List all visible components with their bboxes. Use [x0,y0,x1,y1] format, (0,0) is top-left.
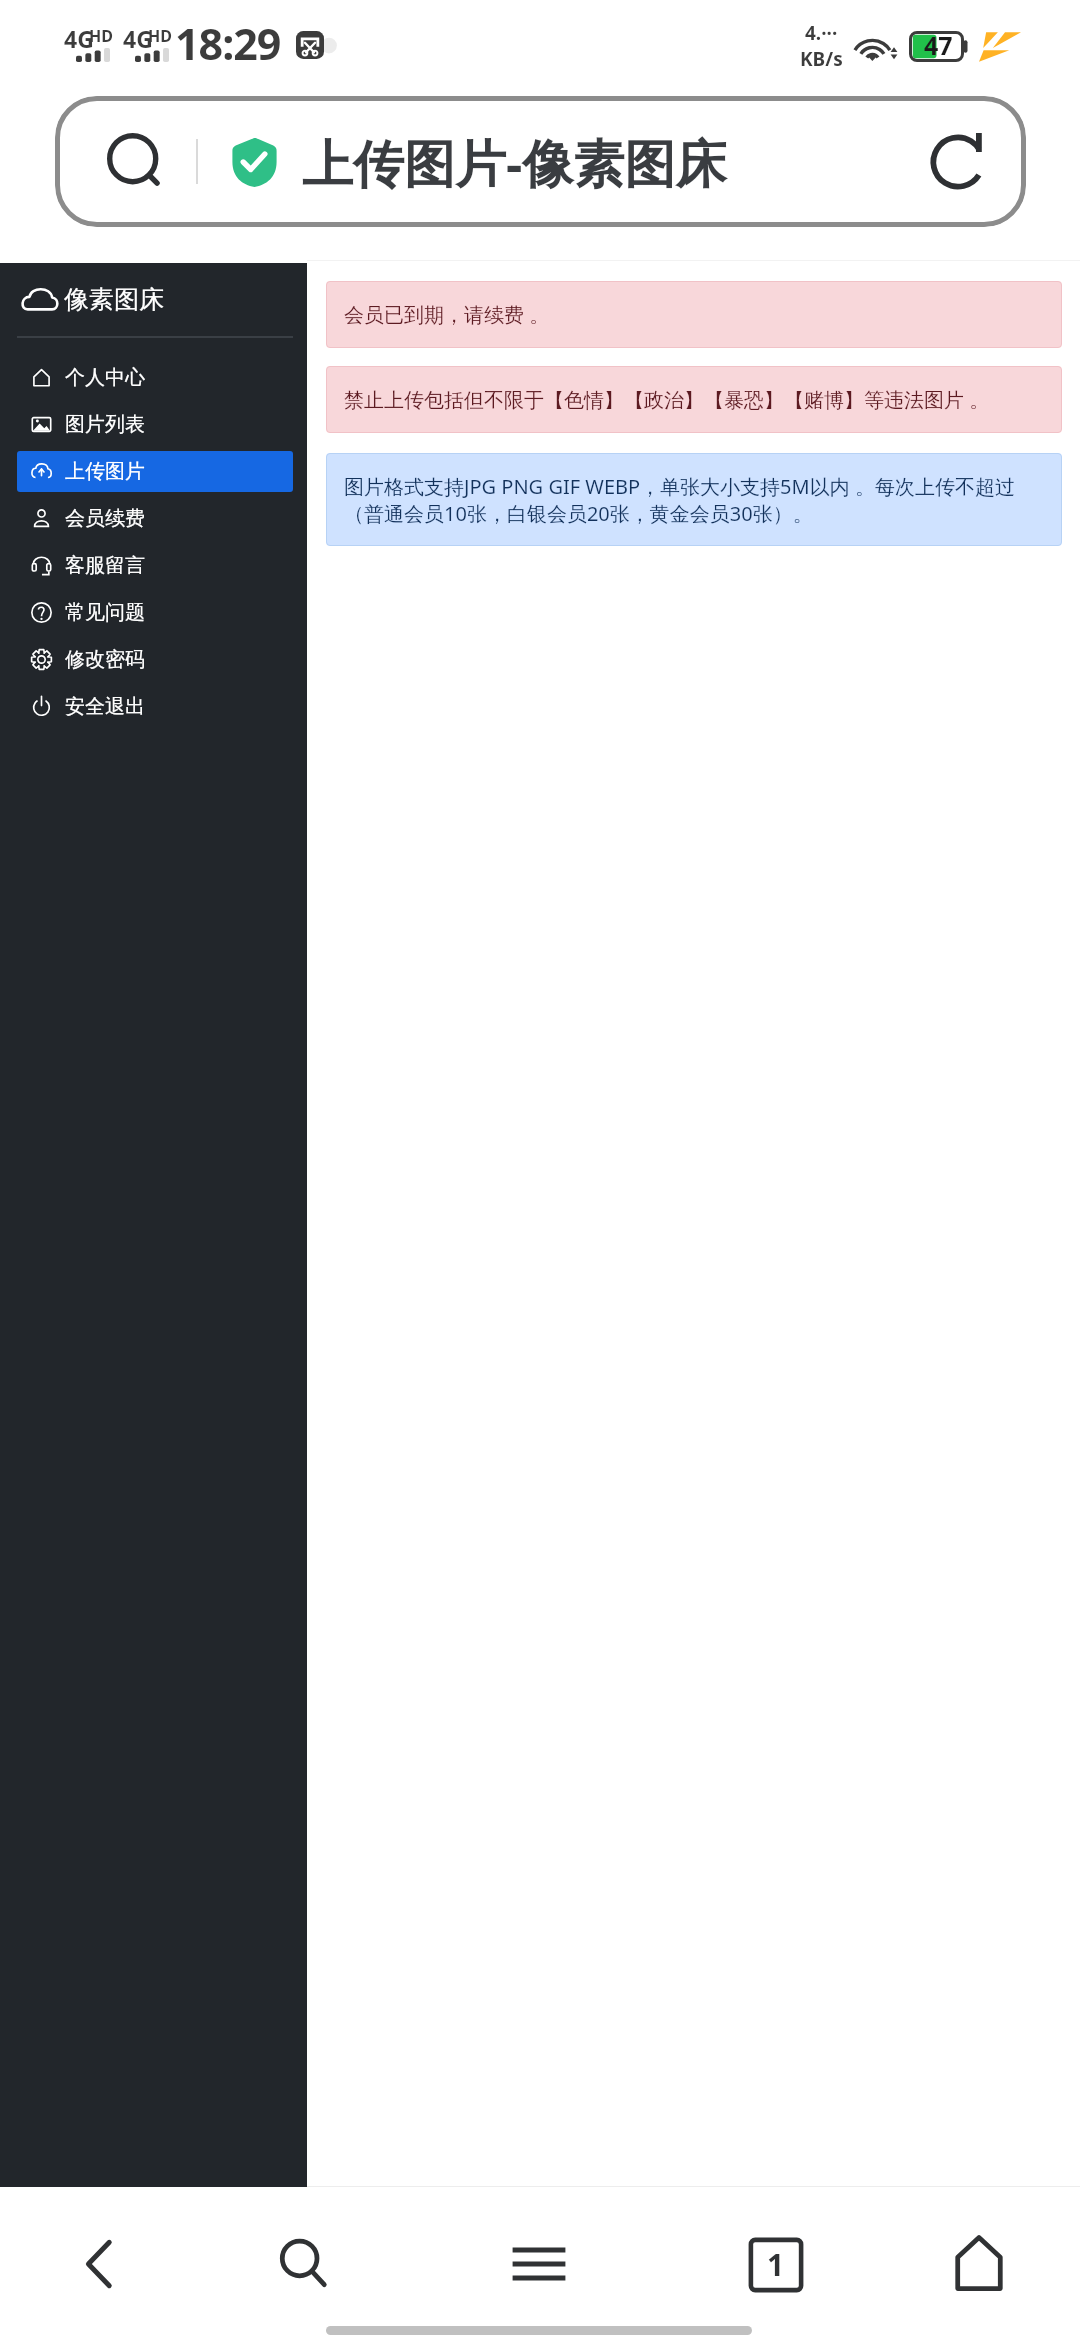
staticText: （普通会员10张，白银会员20张，黄金会员30张）。 [344,500,813,527]
button[interactable]: 安全退出 [17,686,293,727]
staticText: 会员已到期，请续费 。 [344,301,550,328]
staticText: 18:29 [175,14,281,73]
button[interactable]: 上传图片 [17,451,293,492]
staticText: 1 [767,2244,785,2285]
button[interactable]: Search [203,2204,403,2324]
staticText: 4.··· [805,20,838,46]
staticText: 上传图片-像素图床 [302,127,727,197]
staticText: 安全退出 [65,694,145,719]
staticText: 修改密码 [65,647,145,672]
button[interactable]: Search [55,96,1026,227]
staticText: 禁止上传包括但不限于【色情】【政治】【暴恐】【赌博】等违法图片 。 [344,386,990,413]
staticText: 个人中心 [65,365,145,390]
button[interactable]: Tabs [676,2205,876,2325]
staticText: 图片格式支持JPG PNG GIF WEBP，单张大小支持5M以内 。每次上传不… [344,473,1015,500]
button[interactable]: Home [879,2203,1079,2323]
staticText: 上传图片 [65,459,145,484]
button[interactable]: 图片列表 [17,404,293,445]
staticText: 客服留言 [65,553,145,578]
staticText: HD [148,25,172,47]
button[interactable]: 会员续费 [17,498,293,539]
staticText: 47 [924,28,953,62]
staticText: 常见问题 [65,600,145,625]
button[interactable]: 客服留言 [17,545,293,586]
staticText: KB/s [800,46,843,72]
staticText: HD [89,25,113,47]
staticText: 图片列表 [65,412,145,437]
staticText: 4G [64,23,94,54]
staticText: 像素图床 [64,284,164,315]
button[interactable]: 个人中心 [17,357,293,398]
button[interactable]: 像素图床 [21,279,307,319]
staticText: 4G [123,23,153,54]
button[interactable]: 常见问题 [17,592,293,633]
button[interactable]: Back [0,2204,200,2324]
button[interactable]: 修改密码 [17,639,293,680]
button[interactable]: Search [55,96,196,227]
button[interactable]: Menu [439,2204,639,2324]
staticText: 会员续费 [65,506,145,531]
button[interactable]: Refresh [890,96,1026,227]
